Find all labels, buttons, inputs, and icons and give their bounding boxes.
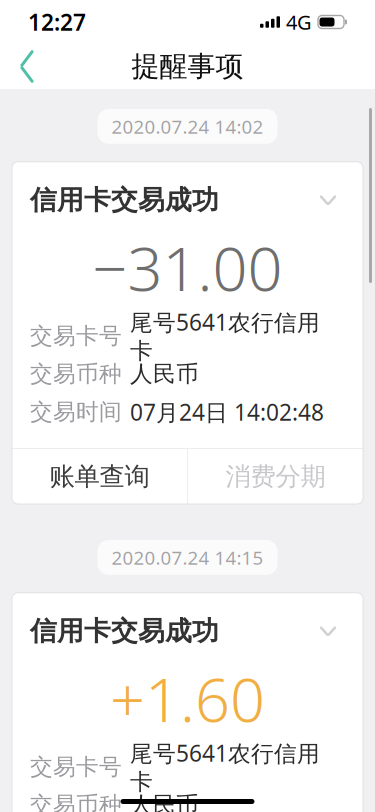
staticText: 交易卡号	[30, 322, 122, 350]
staticText: 人民币	[130, 791, 199, 812]
staticText: 人民币	[130, 360, 199, 388]
staticText: 账单查询	[49, 461, 149, 492]
staticText: 2020.07.24 14:02	[111, 114, 263, 139]
staticText: 信用卡交易成功	[30, 615, 219, 648]
button[interactable]: 账单查询	[12, 449, 187, 504]
button[interactable]: 消费分期	[188, 449, 363, 504]
staticText: 提醒事项	[131, 49, 243, 84]
staticText: 12:27	[28, 7, 86, 37]
staticText: −31.00	[92, 226, 282, 308]
staticText: 交易币种	[30, 791, 122, 812]
staticText: 消费分期	[225, 461, 325, 492]
staticText: 07月24日 14:02:48	[130, 397, 324, 427]
button[interactable]: Expand	[311, 616, 345, 646]
staticText: +1.60	[110, 657, 265, 739]
staticText: 交易币种	[30, 360, 122, 388]
staticText: 交易卡号	[30, 753, 122, 781]
staticText: 4G	[286, 9, 312, 35]
staticText: 2020.07.24 14:15	[111, 545, 263, 570]
staticText: 信用卡交易成功	[30, 184, 219, 217]
staticText: 尾号5641农行信用卡	[130, 307, 320, 365]
button[interactable]: Expand	[311, 185, 345, 215]
staticText: 交易时间	[30, 398, 122, 426]
button[interactable]: Back	[0, 44, 54, 89]
staticText: 尾号5641农行信用卡	[130, 738, 320, 796]
